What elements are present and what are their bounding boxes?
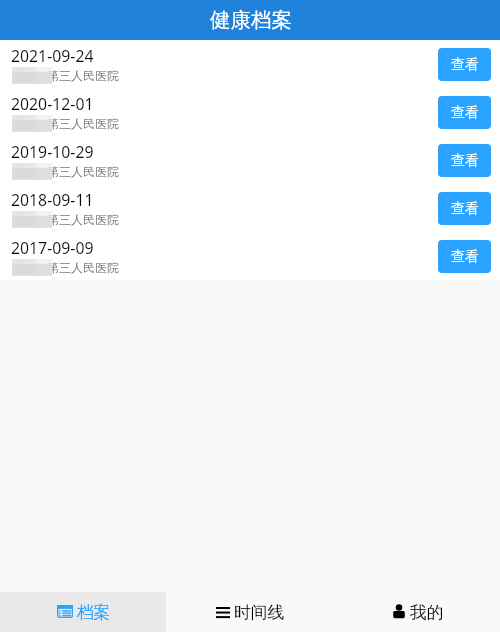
other: Profile bbox=[393, 604, 405, 618]
staticText: 2021-09-24 bbox=[11, 45, 94, 67]
staticText: 我的 bbox=[410, 602, 444, 623]
button[interactable]: 2019-10-29 bbox=[0, 136, 500, 184]
staticText: 档案 bbox=[77, 602, 111, 623]
button[interactable]: 2018-09-11 bbox=[0, 184, 500, 232]
button[interactable]: 查看 bbox=[438, 192, 491, 225]
staticText: 查看 bbox=[451, 56, 479, 74]
button[interactable]: 2021-09-24 bbox=[0, 40, 500, 88]
button[interactable]: Profile bbox=[333, 592, 500, 632]
staticText: 2017-09-09 bbox=[11, 237, 94, 259]
staticText: 第三人民医院 bbox=[47, 68, 119, 83]
other: Timeline bbox=[216, 607, 230, 619]
staticText: 查看 bbox=[451, 104, 479, 122]
button[interactable]: 查看 bbox=[438, 48, 491, 81]
staticText: 2018-09-11 bbox=[11, 189, 94, 211]
button[interactable]: 查看 bbox=[438, 240, 491, 273]
staticText: 时间线 bbox=[234, 602, 285, 623]
staticText: 健康档案 bbox=[210, 7, 292, 33]
button[interactable]: Records bbox=[0, 592, 166, 632]
staticText: 2020-12-01 bbox=[11, 93, 94, 115]
staticText: 第三人民医院 bbox=[47, 260, 119, 275]
button[interactable]: 查看 bbox=[438, 144, 491, 177]
staticText: 2019-10-29 bbox=[11, 141, 94, 163]
button[interactable]: 2017-09-09 bbox=[0, 232, 500, 280]
button[interactable]: Timeline bbox=[166, 592, 333, 632]
staticText: 第三人民医院 bbox=[47, 116, 119, 131]
staticText: 查看 bbox=[451, 200, 479, 218]
staticText: 第三人民医院 bbox=[47, 164, 119, 179]
button[interactable]: 查看 bbox=[438, 96, 491, 129]
button[interactable]: 2020-12-01 bbox=[0, 88, 500, 136]
staticText: 第三人民医院 bbox=[47, 212, 119, 227]
staticText: 查看 bbox=[451, 152, 479, 170]
other: Records bbox=[57, 605, 73, 618]
staticText: 查看 bbox=[451, 248, 479, 266]
